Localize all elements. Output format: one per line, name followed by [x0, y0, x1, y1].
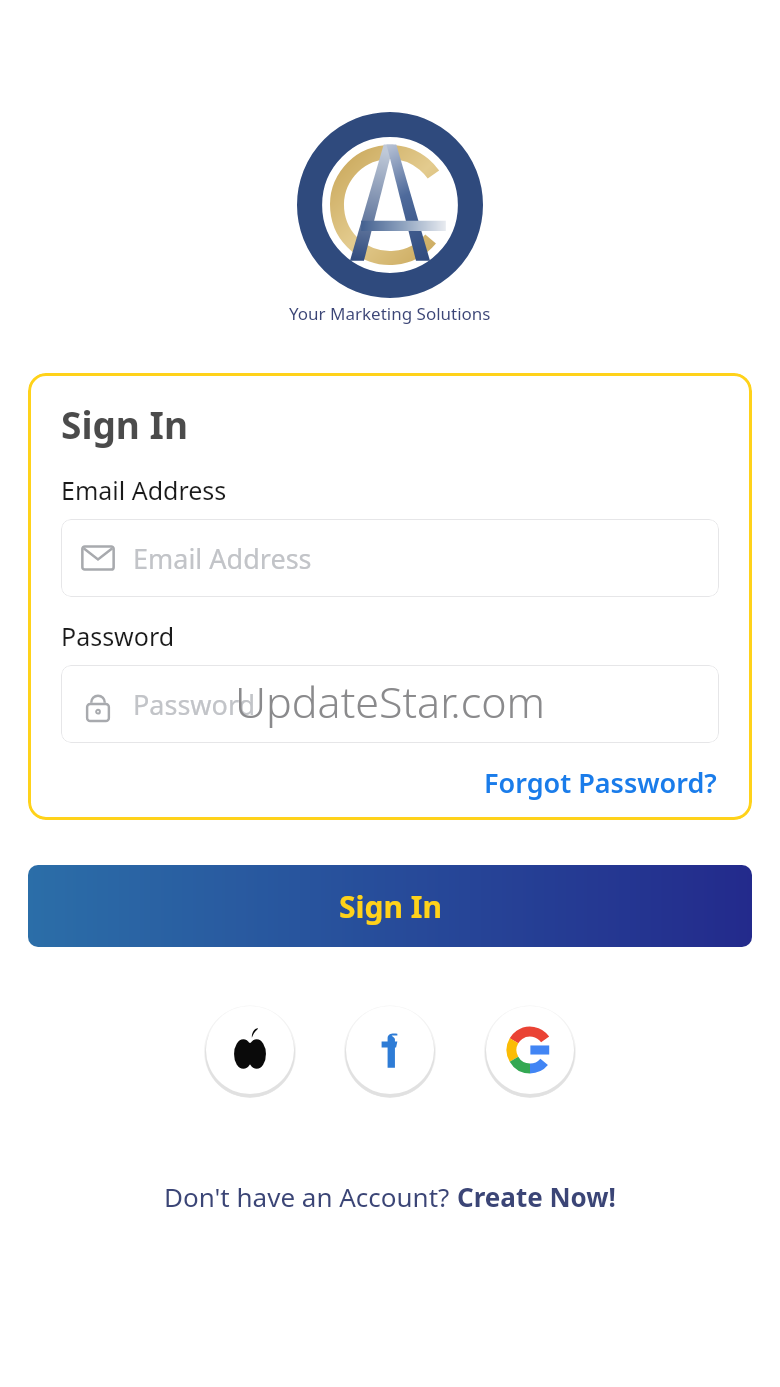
staticText: Create Now!	[457, 1179, 616, 1214]
button[interactable]: Sign in with Facebook	[342, 1002, 438, 1098]
staticText: Email Address	[133, 540, 312, 577]
button[interactable]: Email Address	[61, 519, 719, 597]
button[interactable]: Sign In	[28, 865, 752, 947]
button[interactable]: Sign in with Apple	[202, 1002, 298, 1098]
staticText: Sign In	[61, 399, 188, 449]
staticText: Password	[61, 619, 175, 653]
staticText: Password	[133, 686, 256, 723]
staticText: UpdateStar.com	[235, 672, 545, 731]
button[interactable]: Password	[61, 665, 719, 743]
button[interactable]: Don't have an Account?	[158, 1175, 622, 1218]
staticText: Email Address	[61, 473, 227, 507]
button[interactable]: Forgot Password?	[482, 761, 719, 804]
staticText: Forgot Password?	[484, 764, 717, 801]
button[interactable]: Sign in with Google	[482, 1002, 578, 1098]
staticText: Don't have an Account?	[164, 1179, 457, 1214]
staticText: Sign In	[339, 886, 442, 927]
staticText: Your Marketing Solutions	[289, 302, 491, 325]
